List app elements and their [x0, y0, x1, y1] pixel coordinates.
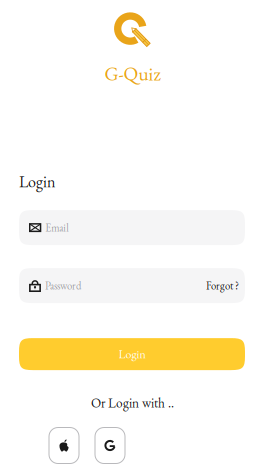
button[interactable]: Sign in with Apple: [49, 427, 79, 463]
staticText: Password: [45, 279, 81, 293]
staticText: Login: [118, 346, 145, 362]
button[interactable]: Sign in with Google: [95, 427, 125, 463]
staticText: G-Quiz: [104, 61, 160, 86]
staticText: Forgot ?: [206, 279, 239, 293]
button[interactable]: Password: [19, 268, 245, 303]
button[interactable]: Login: [19, 338, 245, 370]
staticText: Or Login with ..: [91, 394, 174, 411]
staticText: Email: [45, 221, 69, 235]
staticText: Login: [19, 171, 55, 192]
button[interactable]: Email: [19, 210, 245, 245]
